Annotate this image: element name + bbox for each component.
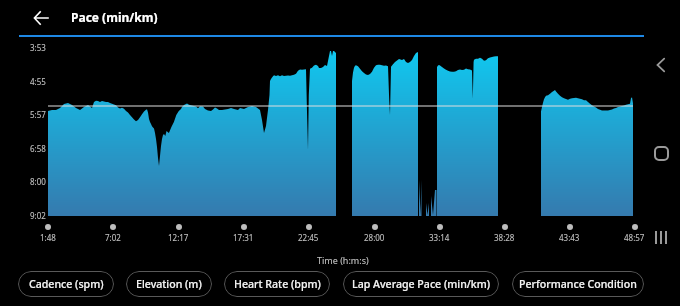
staticText: 38:28 — [494, 232, 515, 243]
button[interactable]: Back — [24, 1, 58, 35]
button[interactable]: Home — [645, 137, 677, 169]
staticText: 12:17 — [168, 232, 189, 243]
button[interactable]: Lap Average Pace (min/km) — [343, 271, 499, 297]
staticText: 33:14 — [429, 232, 450, 243]
staticText: 22:45 — [298, 232, 319, 243]
staticText: 8:00 — [30, 176, 46, 187]
staticText: 28:00 — [364, 232, 385, 243]
button[interactable]: Elevation (m) — [126, 271, 212, 297]
staticText: Performance Condition — [519, 277, 637, 291]
button[interactable]: Performance Condition — [512, 271, 644, 297]
button[interactable]: Back — [645, 49, 677, 81]
staticText: 7:02 — [105, 232, 121, 243]
button[interactable]: Cadence (spm) — [18, 271, 114, 297]
staticText: 43:43 — [559, 232, 580, 243]
staticText: Cadence (spm) — [29, 277, 104, 291]
staticText: Time (h:m:s) — [317, 254, 369, 266]
staticText: 17:31 — [233, 232, 254, 243]
staticText: 1:48 — [40, 232, 56, 243]
button[interactable]: Recents — [645, 221, 677, 253]
staticText: Lap Average Pace (min/km) — [352, 277, 491, 291]
staticText: 6:58 — [30, 143, 46, 154]
staticText: Heart Rate (bpm) — [234, 277, 321, 291]
staticText: Elevation (m) — [136, 277, 202, 291]
button[interactable]: Heart Rate (bpm) — [224, 271, 330, 297]
staticText: 3:53 — [30, 42, 46, 53]
staticText: 48:57 — [624, 232, 645, 243]
staticText: 4:55 — [30, 76, 46, 87]
staticText: 9:02 — [30, 210, 46, 221]
staticText: 5:57 — [30, 109, 46, 120]
staticText: Pace (min/km) — [71, 9, 158, 25]
